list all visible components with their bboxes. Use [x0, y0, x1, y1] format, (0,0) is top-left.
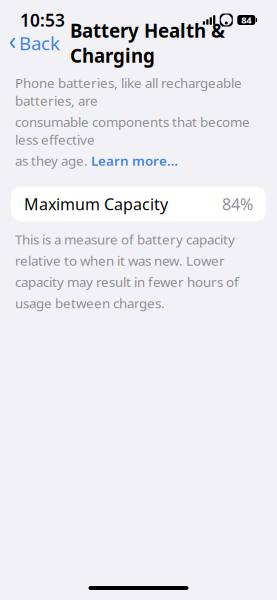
staticText: as they age. — [15, 152, 91, 169]
staticText: Phone batteries, like all rechargeable b… — [15, 74, 242, 109]
staticText: Learn more… — [91, 152, 178, 169]
staticText: 84% — [222, 193, 253, 215]
staticText: 10:53 — [20, 8, 65, 31]
staticText: This is a measure of battery capacity re… — [15, 230, 239, 312]
button[interactable]: Maximum Capacity — [11, 186, 266, 221]
staticText: Back — [19, 31, 60, 55]
button[interactable]: Learn more… — [91, 152, 178, 169]
staticText: 84 — [241, 14, 251, 26]
staticText: consumable components that become less e… — [15, 113, 250, 148]
button[interactable]: Back — [0, 26, 60, 60]
staticText: Maximum Capacity — [24, 193, 168, 215]
staticText: Battery Health & Charging — [70, 18, 225, 68]
